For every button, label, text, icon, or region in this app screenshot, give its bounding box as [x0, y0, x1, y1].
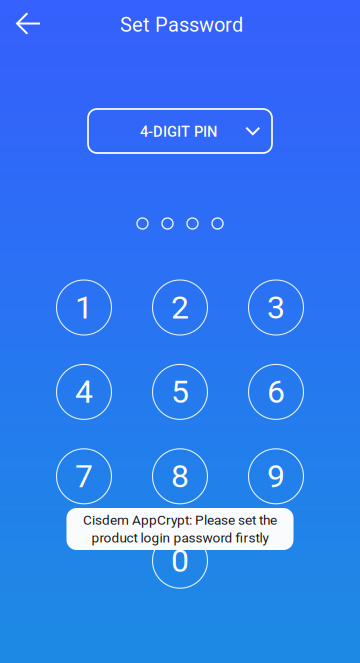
- staticText: 6: [267, 373, 285, 411]
- button[interactable]: 2: [152, 280, 207, 335]
- button[interactable]: 1: [56, 280, 111, 335]
- staticText: Set Password: [120, 13, 243, 37]
- staticText: 2: [171, 289, 189, 326]
- staticText: 4-DIGIT PIN: [140, 123, 217, 140]
- button[interactable]: 9: [248, 449, 303, 504]
- button[interactable]: 6: [248, 364, 303, 419]
- button[interactable]: 0: [152, 533, 207, 588]
- staticText: 8: [171, 458, 189, 495]
- staticText: 3: [267, 289, 285, 326]
- button[interactable]: 4-DIGIT PIN: [88, 109, 272, 153]
- staticText: Cisdem AppCrypt: Please set the: [83, 512, 277, 528]
- staticText: 5: [171, 373, 189, 411]
- button[interactable]: 7: [56, 449, 111, 504]
- button[interactable]: 3: [248, 280, 303, 335]
- button[interactable]: 8: [152, 449, 207, 504]
- staticText: 1: [75, 289, 93, 326]
- staticText: 4: [75, 373, 93, 411]
- staticText: product login password firstly: [91, 530, 268, 546]
- button[interactable]: Back: [6, 1, 50, 45]
- button[interactable]: 5: [152, 364, 207, 419]
- staticText: 9: [267, 458, 285, 495]
- button[interactable]: 4: [56, 364, 111, 419]
- staticText: 0: [171, 542, 189, 579]
- staticText: 7: [75, 458, 93, 495]
